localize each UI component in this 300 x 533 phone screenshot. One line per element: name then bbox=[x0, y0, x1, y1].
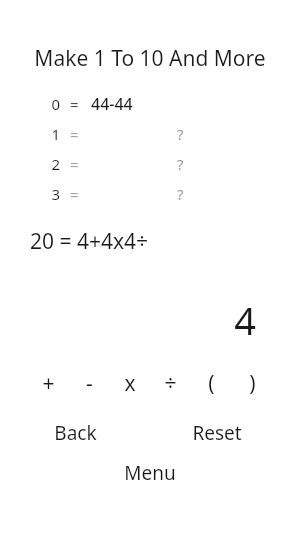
button[interactable]: Menu bbox=[0, 458, 300, 488]
button[interactable]: ( bbox=[197, 368, 225, 398]
staticText: 3 bbox=[42, 184, 60, 204]
staticText: - bbox=[86, 369, 93, 398]
button[interactable]: 3 bbox=[0, 179, 300, 209]
button[interactable]: Reset bbox=[142, 418, 292, 448]
staticText: ÷ bbox=[164, 369, 177, 398]
staticText: = bbox=[70, 124, 79, 144]
staticText: ? bbox=[177, 184, 184, 204]
staticText: 1 bbox=[42, 124, 60, 144]
staticText: = bbox=[70, 184, 79, 204]
staticText: Back bbox=[54, 420, 97, 446]
button[interactable]: ) bbox=[238, 368, 266, 398]
button[interactable]: ÷ bbox=[156, 368, 184, 398]
staticText: ) bbox=[249, 369, 256, 398]
button[interactable]: 2 bbox=[0, 149, 300, 179]
staticText: Menu bbox=[124, 460, 176, 486]
staticText: = bbox=[70, 94, 79, 114]
staticText: 0 bbox=[42, 94, 60, 114]
staticText: + bbox=[42, 369, 55, 398]
staticText: 4 bbox=[0, 294, 256, 346]
staticText: x bbox=[124, 369, 136, 398]
button[interactable]: 1 bbox=[0, 119, 300, 149]
staticText: = bbox=[70, 154, 79, 174]
staticText: ( bbox=[208, 369, 215, 398]
staticText: 2 bbox=[42, 154, 60, 174]
staticText: Reset bbox=[192, 420, 242, 446]
button[interactable]: - bbox=[75, 368, 103, 398]
staticText: ? bbox=[177, 154, 184, 174]
button[interactable]: Back bbox=[0, 418, 150, 448]
button[interactable]: 0 bbox=[0, 89, 300, 119]
staticText: Make 1 To 10 And More bbox=[0, 44, 300, 73]
staticText: 20 = 4+4x4÷ bbox=[30, 227, 149, 256]
button[interactable]: + bbox=[34, 368, 62, 398]
button[interactable]: x bbox=[116, 368, 144, 398]
staticText: 44-44 bbox=[91, 93, 133, 115]
staticText: ? bbox=[177, 124, 184, 144]
